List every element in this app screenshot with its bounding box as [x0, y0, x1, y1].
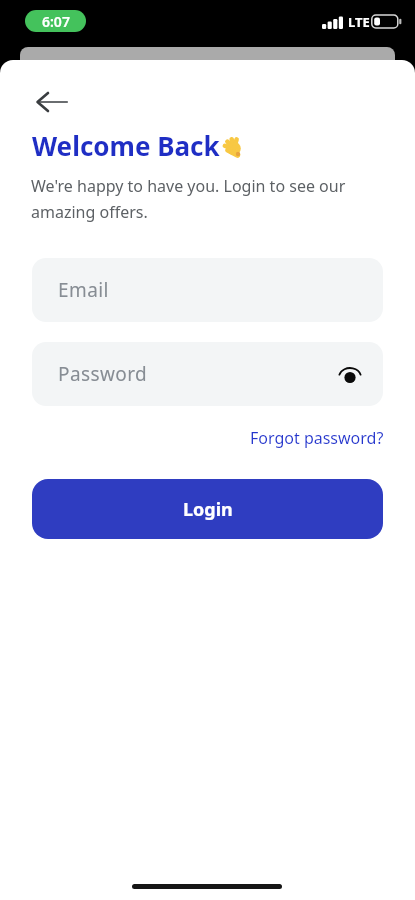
- button[interactable]: Email: [32, 258, 383, 322]
- button[interactable]: Login: [32, 479, 383, 539]
- staticText: 6:07: [42, 12, 70, 31]
- button[interactable]: [337, 361, 363, 387]
- staticText: Login: [183, 497, 233, 522]
- staticText: Email: [58, 277, 109, 303]
- button[interactable]: Password: [32, 342, 383, 406]
- staticText: Password: [58, 361, 148, 387]
- button[interactable]: Forgot password?: [250, 427, 384, 449]
- staticText: We're happy to have you. Login to see ou…: [31, 175, 346, 223]
- button[interactable]: [24, 82, 80, 122]
- staticText: Welcome Back: [32, 128, 220, 163]
- staticText: LTE: [348, 13, 370, 31]
